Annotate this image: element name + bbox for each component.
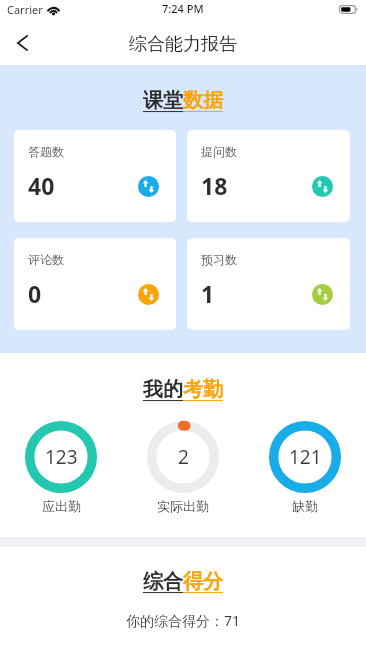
- staticText: 缺勤: [292, 498, 318, 514]
- staticText: 1: [201, 278, 215, 309]
- button[interactable]: 121: [269, 421, 341, 493]
- button[interactable]: 2: [147, 421, 219, 493]
- staticText: 考勤: [183, 377, 223, 402]
- staticText: 课堂: [143, 88, 183, 113]
- staticText: 40: [28, 170, 55, 201]
- staticText: 18: [201, 170, 228, 201]
- button[interactable]: 答题数: [14, 130, 176, 222]
- staticText: 数据: [183, 88, 223, 113]
- staticText: 综合: [143, 569, 183, 594]
- staticText: 答题数: [28, 144, 64, 159]
- staticText: Carrier: [7, 2, 43, 17]
- button[interactable]: 提问数: [187, 130, 350, 222]
- button[interactable]: 预习数: [187, 238, 350, 330]
- staticText: 123: [45, 444, 78, 470]
- staticText: 我的: [143, 377, 183, 402]
- button[interactable]: 评论数: [14, 238, 176, 330]
- staticText: 实际出勤: [157, 498, 209, 514]
- staticText: 得分: [183, 569, 223, 594]
- staticText: 7:24 PM: [162, 1, 204, 16]
- staticText: 综合能力报告: [129, 33, 237, 56]
- staticText: 应出勤: [42, 498, 81, 514]
- staticText: 提问数: [201, 144, 237, 159]
- button[interactable]: Back: [0, 21, 44, 65]
- staticText: 0: [28, 278, 42, 309]
- staticText: 2: [178, 444, 189, 470]
- staticText: 评论数: [28, 252, 64, 267]
- staticText: 你的综合得分：71: [0, 611, 366, 630]
- staticText: 121: [289, 444, 322, 470]
- staticText: 预习数: [201, 252, 237, 267]
- button[interactable]: 123: [25, 421, 97, 493]
